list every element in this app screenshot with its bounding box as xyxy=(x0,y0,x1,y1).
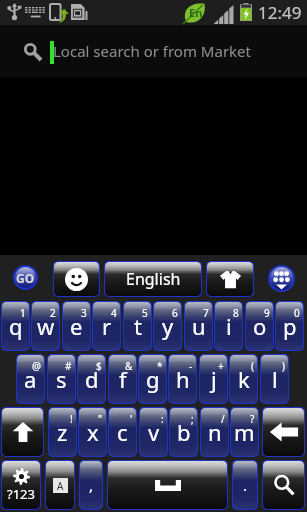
staticText: + xyxy=(218,359,224,373)
staticText: ! xyxy=(70,412,73,426)
staticText: 9 xyxy=(264,306,270,320)
staticText: 1 xyxy=(20,306,26,320)
staticText: 12:49 xyxy=(258,1,302,24)
staticText: o xyxy=(253,311,267,341)
staticText: m xyxy=(234,417,255,447)
staticText: b xyxy=(177,417,191,447)
staticText: A xyxy=(57,479,64,493)
button[interactable]: b xyxy=(170,408,197,456)
staticText: 5 xyxy=(142,306,148,320)
button[interactable]: GO xyxy=(15,267,36,288)
staticText: x xyxy=(87,417,99,447)
button[interactable]: More xyxy=(270,267,293,290)
staticText: y xyxy=(162,311,174,341)
button[interactable]: o xyxy=(246,302,273,350)
staticText: s xyxy=(56,364,67,394)
staticText: ' xyxy=(130,412,133,426)
staticText: d xyxy=(85,364,99,394)
button[interactable]: t xyxy=(124,302,151,350)
staticText: h xyxy=(176,364,190,394)
staticText: z xyxy=(57,417,68,447)
staticText: ?123 xyxy=(7,485,35,503)
button[interactable]: Theme xyxy=(207,262,253,296)
staticText: 7 xyxy=(203,306,209,320)
staticText: u xyxy=(192,311,206,341)
button[interactable]: d xyxy=(78,355,105,403)
staticText: w xyxy=(37,311,55,341)
button[interactable]: z xyxy=(49,408,76,456)
staticText: / xyxy=(221,412,225,426)
button[interactable]: x xyxy=(79,408,106,456)
button[interactable]: v xyxy=(140,408,167,456)
button[interactable]: , xyxy=(80,461,102,509)
staticText: 0 xyxy=(294,306,300,320)
button[interactable]: Settings xyxy=(2,461,40,509)
staticText: Local search or from Market xyxy=(53,41,251,61)
button[interactable]: m xyxy=(231,408,258,456)
staticText: c xyxy=(117,417,128,447)
button[interactable]: l xyxy=(261,355,288,403)
button[interactable]: j xyxy=(200,355,227,403)
button[interactable]: f xyxy=(109,355,136,403)
button[interactable]: g xyxy=(139,355,166,403)
button[interactable]: y xyxy=(154,302,181,350)
staticText: & xyxy=(125,359,133,373)
button[interactable]: q xyxy=(2,302,29,350)
staticText: : xyxy=(161,412,164,426)
button[interactable]: Search xyxy=(263,461,304,509)
staticText: En xyxy=(189,5,203,20)
staticText: " xyxy=(98,412,103,426)
button[interactable]: i xyxy=(215,302,242,350)
staticText: j xyxy=(211,364,217,394)
staticText: g xyxy=(146,364,160,394)
button[interactable]: e xyxy=(63,302,90,350)
button[interactable]: s xyxy=(48,355,75,403)
button[interactable]: Emoji xyxy=(54,262,99,296)
button[interactable]: Space xyxy=(108,461,227,509)
staticText: $ xyxy=(96,359,102,373)
staticText: r xyxy=(102,311,112,341)
staticText: 2 xyxy=(50,306,56,320)
staticText: 3 xyxy=(81,306,87,320)
button[interactable]: n xyxy=(201,408,228,456)
staticText: . xyxy=(243,475,248,495)
staticText: t xyxy=(134,311,142,341)
staticText: # xyxy=(65,359,72,373)
staticText: e xyxy=(70,311,83,341)
button[interactable]: English xyxy=(105,262,201,296)
button[interactable]: a xyxy=(17,355,44,403)
staticText: ( xyxy=(251,359,254,373)
staticText: ; xyxy=(191,412,194,426)
button[interactable]: r xyxy=(93,302,120,350)
staticText: l xyxy=(272,364,278,394)
staticText: a xyxy=(24,364,37,394)
button[interactable]: w xyxy=(32,302,59,350)
staticText: i xyxy=(226,311,232,341)
staticText: 8 xyxy=(233,306,239,320)
staticText: 6 xyxy=(172,306,178,320)
staticText: n xyxy=(208,417,222,447)
staticText: - xyxy=(189,359,193,373)
staticText: , xyxy=(89,475,94,495)
button[interactable]: h xyxy=(169,355,196,403)
staticText: p xyxy=(283,311,297,341)
staticText: @ xyxy=(32,359,41,373)
button[interactable]: c xyxy=(109,408,136,456)
staticText: GO xyxy=(16,270,35,286)
staticText: 4 xyxy=(111,306,117,320)
button[interactable]: p xyxy=(276,302,303,350)
button[interactable]: k xyxy=(230,355,257,403)
button[interactable]: Backspace xyxy=(263,408,304,456)
button[interactable]: u xyxy=(185,302,212,350)
staticText: v xyxy=(148,417,160,447)
button[interactable]: Language xyxy=(46,461,74,509)
staticText: ? xyxy=(250,412,255,426)
staticText: q xyxy=(9,311,23,341)
staticText: ) xyxy=(282,359,285,373)
button[interactable]: . xyxy=(233,461,257,509)
staticText: f xyxy=(119,364,127,394)
staticText: * xyxy=(157,359,163,373)
staticText: k xyxy=(238,364,250,394)
button[interactable]: Shift xyxy=(2,408,43,456)
staticText: English xyxy=(126,268,181,290)
